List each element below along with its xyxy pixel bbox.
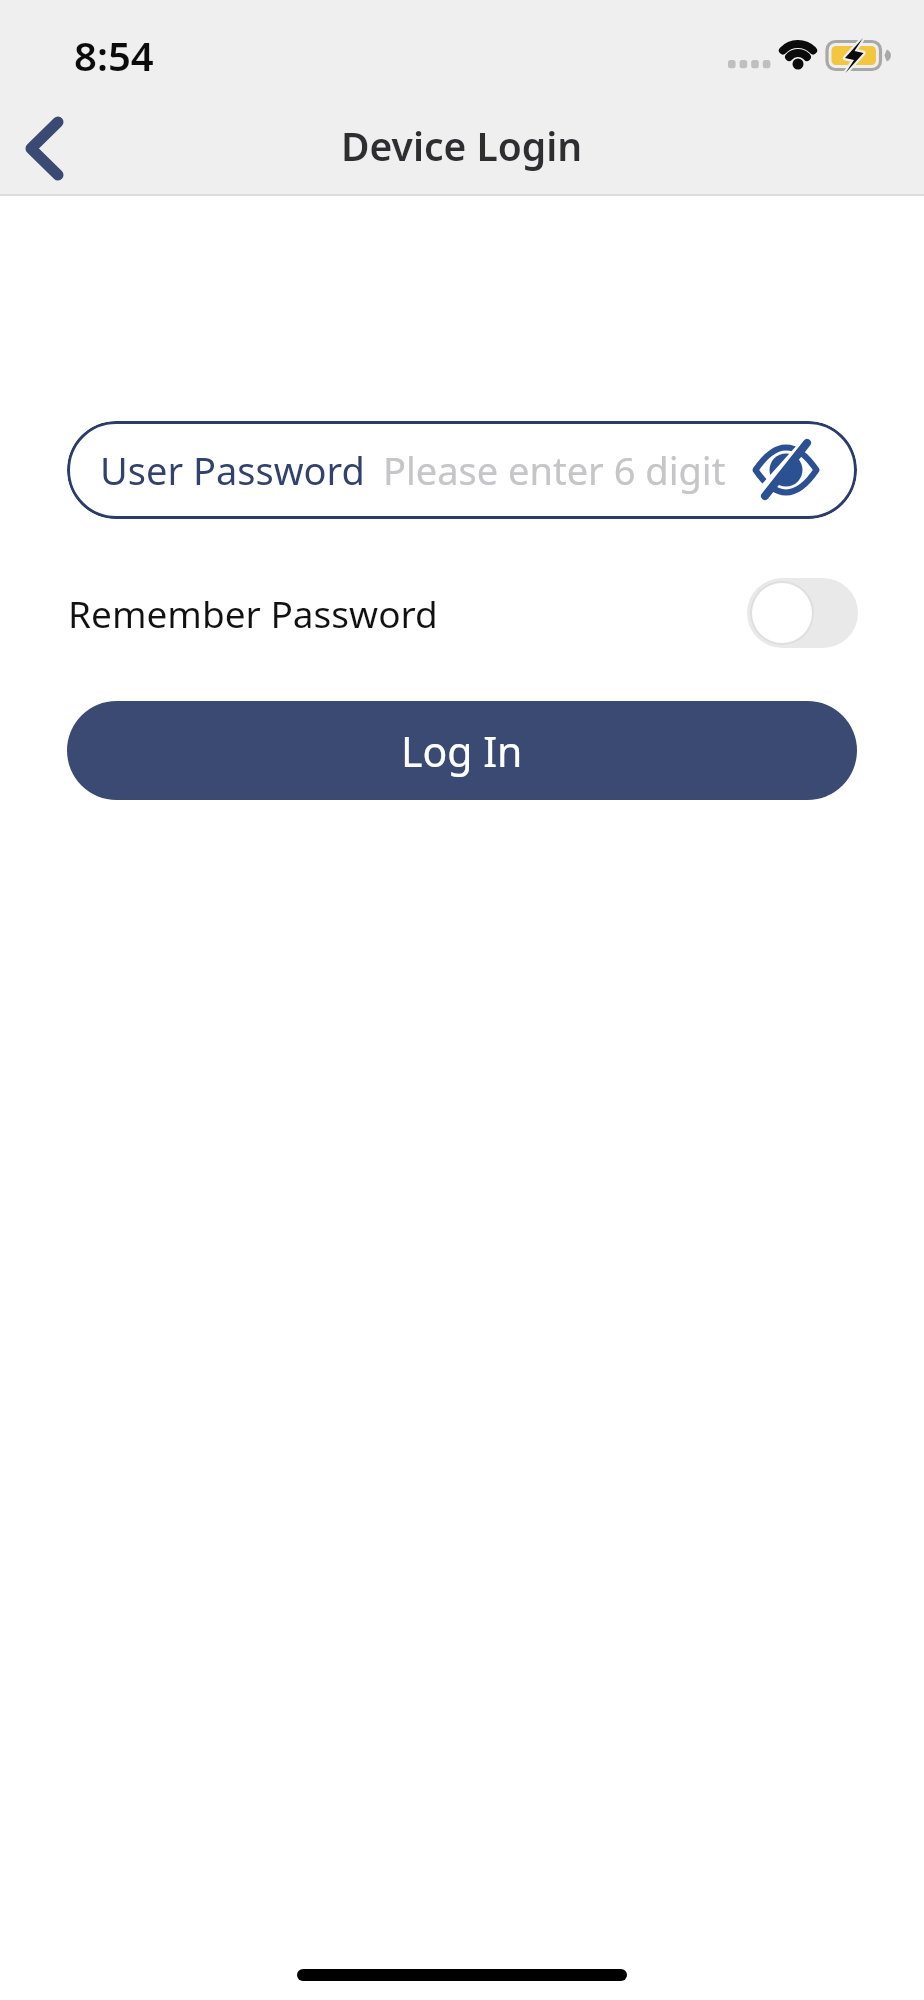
button[interactable]: User Password: [67, 421, 857, 519]
staticText: 8:54: [74, 28, 154, 82]
button[interactable]: [10, 105, 80, 190]
staticText: Device Login: [341, 119, 583, 172]
staticText: User Password: [100, 444, 365, 496]
staticText: Remember Password: [68, 588, 438, 638]
staticText: Please enter 6 digit: [383, 444, 755, 496]
button[interactable]: [747, 578, 858, 648]
button[interactable]: Log In: [67, 701, 857, 800]
staticText: Log In: [401, 723, 523, 779]
